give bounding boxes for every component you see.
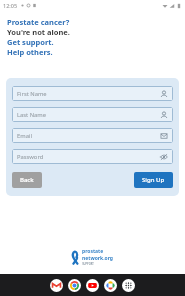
- button[interactable]: Back: [12, 172, 42, 188]
- staticText: Get support.: [7, 37, 54, 47]
- button[interactable]: First Name: [12, 86, 173, 101]
- staticText: Email: [17, 132, 32, 140]
- staticText: Sign Up: [142, 176, 165, 184]
- staticText: prostate: [82, 248, 104, 255]
- other: Name: [160, 111, 168, 119]
- staticText: network.org: [82, 255, 114, 262]
- button[interactable]: Email: [12, 128, 173, 143]
- button[interactable]: YouTube: [86, 279, 99, 292]
- other: Name: [160, 90, 168, 98]
- staticText: Help others.: [7, 47, 53, 57]
- button[interactable]: Photos: [104, 279, 117, 292]
- staticText: First Name: [17, 90, 47, 98]
- button[interactable]: Password: [12, 149, 173, 164]
- button[interactable]: Gmail: [50, 279, 63, 292]
- staticText: Password: [17, 153, 44, 161]
- other: Show password: [160, 153, 168, 161]
- staticText: Prostate cancer?: [7, 17, 70, 27]
- staticText: 12:05: [3, 2, 18, 9]
- other: Email: [160, 132, 168, 140]
- other: Prostate cancer ribbon: [71, 251, 80, 264]
- button[interactable]: All apps: [122, 279, 135, 292]
- button[interactable]: Last Name: [12, 107, 173, 122]
- staticText: SUPPORT: [82, 262, 94, 266]
- button[interactable]: Chrome: [68, 279, 81, 292]
- staticText: You're not alone.: [7, 27, 70, 37]
- button[interactable]: Sign Up: [134, 172, 173, 188]
- staticText: Last Name: [17, 111, 47, 119]
- staticText: Back: [20, 176, 34, 184]
